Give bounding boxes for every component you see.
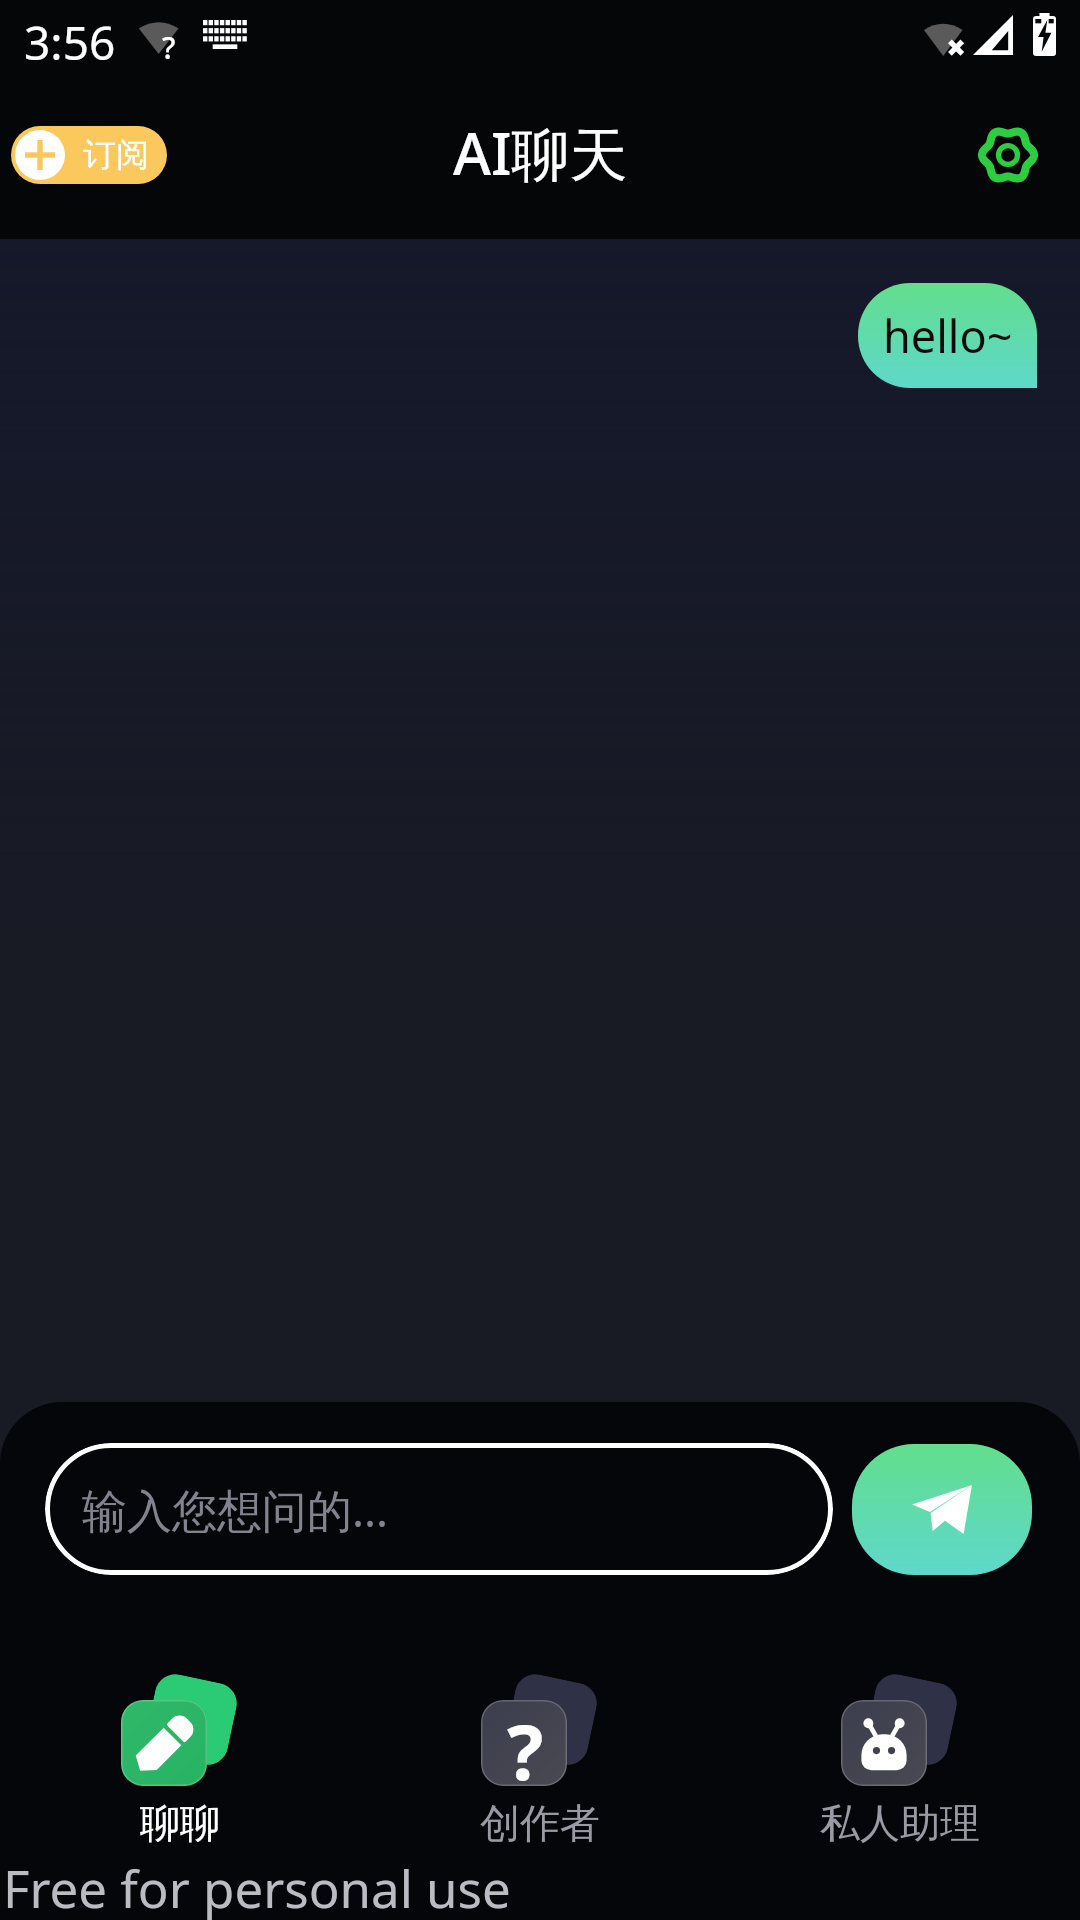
button[interactable]: ? — [390, 1671, 690, 1848]
staticText: 输入您想问的... — [82, 1479, 389, 1540]
staticText: 订阅 — [83, 134, 149, 176]
staticText: hello~ — [883, 305, 1013, 366]
button[interactable]: 订阅 — [11, 126, 167, 184]
staticText: 聊聊 — [140, 1798, 220, 1848]
button[interactable]: 私人助理 — [750, 1671, 1050, 1848]
staticText: 3:56 — [24, 11, 116, 74]
staticText: Free for personal use — [3, 1853, 511, 1920]
button[interactable]: Settings — [962, 109, 1054, 201]
button[interactable]: 聊聊 — [30, 1671, 330, 1848]
staticText: ? — [162, 27, 176, 68]
staticText: ? — [507, 1700, 544, 1785]
button[interactable]: hello~ — [858, 283, 1037, 388]
button[interactable]: Send — [852, 1444, 1032, 1575]
button[interactable]: 输入您想问的... — [45, 1443, 833, 1575]
staticText: 创作者 — [480, 1798, 600, 1848]
staticText: 私人助理 — [820, 1798, 980, 1848]
staticText: AI聊天 — [453, 113, 628, 192]
